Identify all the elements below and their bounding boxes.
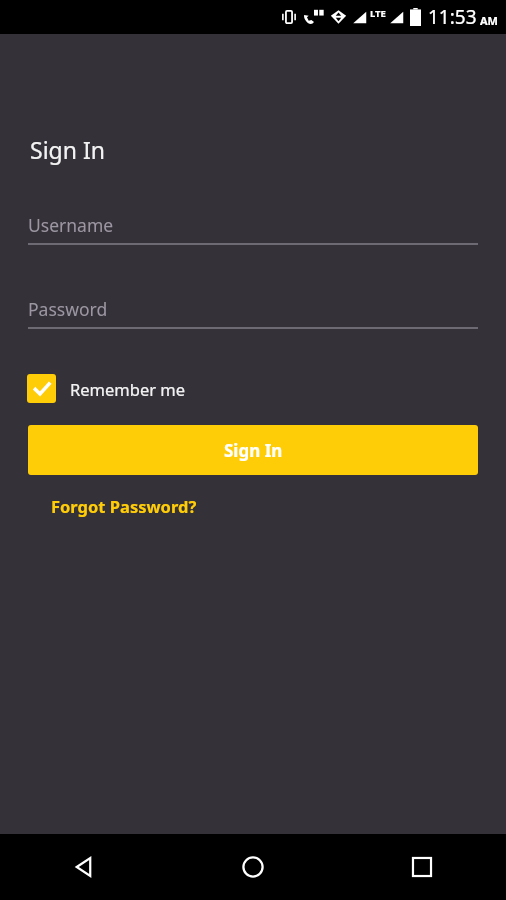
staticText: AM <box>480 13 498 28</box>
staticText: Sign In <box>224 439 283 462</box>
staticText: 11:53 <box>428 4 477 30</box>
button[interactable]: Sign In <box>28 425 478 475</box>
button[interactable]: Recent apps <box>337 834 506 900</box>
staticText: Sign In <box>30 134 105 165</box>
button[interactable]: Remember me <box>27 372 196 405</box>
button[interactable]: Password <box>28 297 478 327</box>
button[interactable]: Back <box>0 834 168 900</box>
staticText: Password <box>28 297 108 321</box>
button[interactable]: Forgot Password? <box>51 495 197 517</box>
staticText: Forgot Password? <box>51 495 197 517</box>
staticText: LTE <box>370 7 386 20</box>
staticText: Remember me <box>70 378 186 400</box>
button[interactable]: Username <box>28 213 478 243</box>
staticText: Username <box>28 213 114 237</box>
button[interactable]: Home <box>168 834 337 900</box>
